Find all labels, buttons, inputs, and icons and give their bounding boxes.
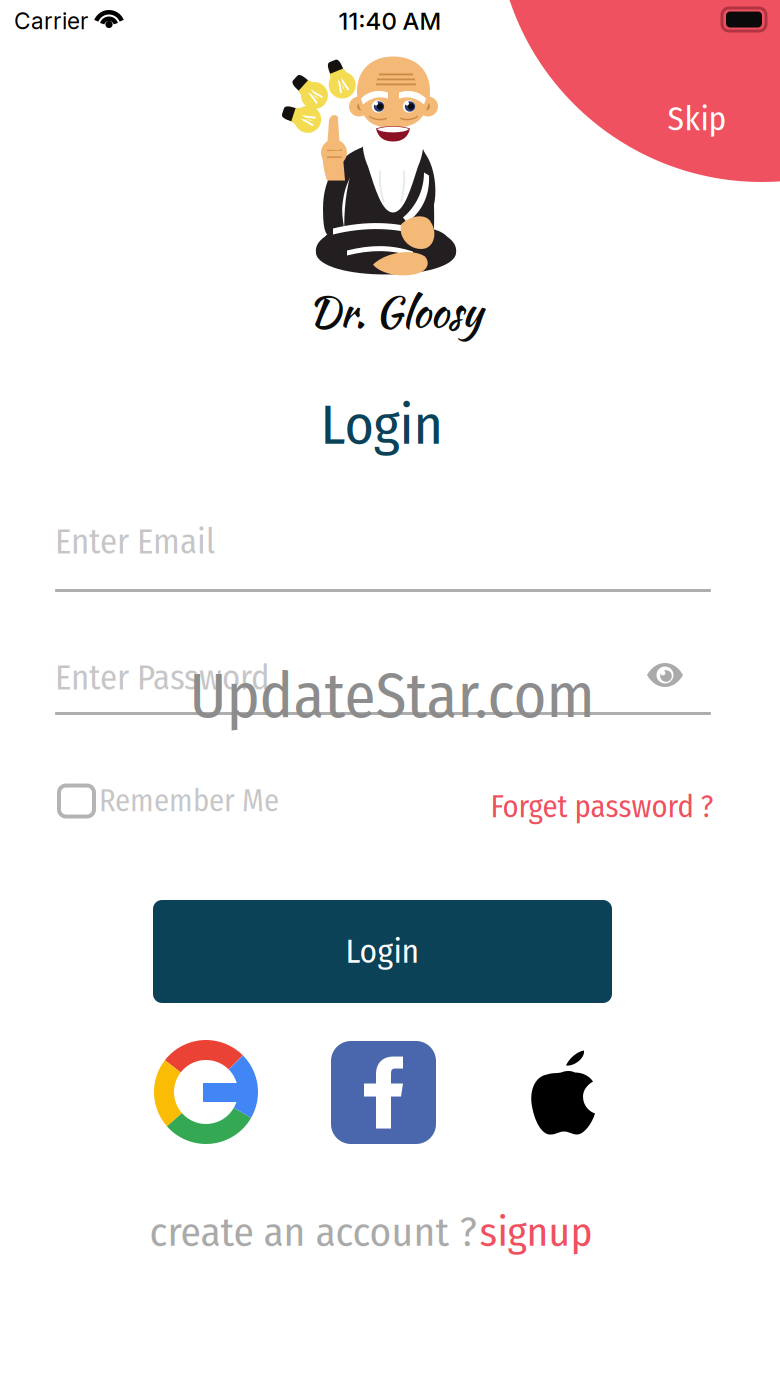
- button[interactable]: Show password: [635, 651, 695, 699]
- button[interactable]: Forget password ?: [482, 784, 722, 830]
- button[interactable]: Login: [153, 900, 612, 1003]
- staticText: Login: [320, 391, 443, 459]
- button[interactable]: Sign in with Apple: [518, 1042, 608, 1145]
- button[interactable]: Skip: [637, 90, 757, 148]
- staticText: Forget password ?: [490, 789, 713, 825]
- button[interactable]: Sign in with Google: [153, 1039, 259, 1145]
- button[interactable]: create an account ?: [141, 1204, 601, 1260]
- staticText: 11:40 AM: [338, 6, 441, 35]
- staticText: Dr. Gloosy: [308, 282, 482, 342]
- staticText: signup: [479, 1207, 592, 1257]
- staticText: create an account ?: [149, 1207, 476, 1257]
- staticText: Enter Password: [55, 657, 270, 699]
- staticText: Login: [345, 931, 419, 971]
- button[interactable]: Sign in with Facebook: [331, 1041, 436, 1144]
- staticText: Enter Email: [55, 521, 215, 563]
- staticText: Carrier: [14, 7, 88, 35]
- staticText: Skip: [667, 99, 726, 139]
- button[interactable]: Remember Me: [59, 779, 359, 823]
- staticText: Remember Me: [99, 783, 279, 819]
- staticText: UpdateStar.com: [189, 658, 594, 734]
